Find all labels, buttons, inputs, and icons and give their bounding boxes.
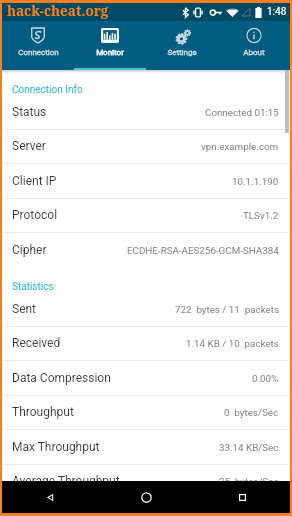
staticText: 25 bytes/Sec — [219, 476, 279, 487]
staticText: Server — [12, 139, 46, 153]
button[interactable]: Connection — [2, 21, 74, 68]
staticText: Monitor — [96, 48, 124, 57]
staticText: 0 bytes/Sec — [224, 407, 279, 418]
staticText: Statistics — [12, 281, 54, 293]
staticText: vpn.example.com — [201, 141, 279, 152]
staticText: Connection — [18, 48, 59, 57]
staticText: 1.14 KB / 10 packets — [186, 338, 279, 349]
button[interactable]: Throughput — [2, 395, 290, 430]
button[interactable]: Server — [2, 129, 290, 164]
staticText: Received — [12, 336, 61, 350]
staticText: Data Compression — [12, 371, 111, 385]
staticText: Status — [12, 105, 47, 119]
staticText: Protocol — [12, 208, 58, 222]
button[interactable]: Received — [2, 326, 290, 361]
staticText: Connected 01:15 — [205, 107, 279, 118]
staticText: Sent — [12, 302, 37, 316]
staticText: Max Throughput — [12, 440, 100, 454]
staticText: 10.1.1.190 — [232, 176, 279, 187]
staticText: Client IP — [12, 174, 57, 188]
button[interactable]: Max Throughput — [2, 430, 290, 465]
staticText: 722 bytes / 11 packets — [175, 304, 279, 315]
staticText: Average Throughput — [12, 474, 120, 488]
staticText: 1:48 — [267, 6, 287, 18]
button[interactable]: Cipher — [2, 233, 290, 268]
button[interactable]: Recents — [194, 481, 290, 513]
button[interactable]: Settings — [146, 21, 218, 68]
button[interactable]: Home — [98, 481, 194, 513]
staticText: Cipher — [12, 243, 47, 257]
button[interactable]: Average Throughput — [2, 464, 290, 499]
staticText: About — [243, 48, 265, 57]
staticText: hack-cheat.org — [7, 2, 109, 20]
staticText: Throughput — [12, 405, 74, 419]
button[interactable]: Monitor — [74, 21, 146, 68]
staticText: 33.14 KB/Sec — [219, 442, 279, 453]
button[interactable]: Data Compression — [2, 361, 290, 396]
button[interactable]: Sent — [2, 292, 290, 327]
staticText: Settings — [167, 48, 197, 57]
staticText: Connection Info — [12, 84, 83, 96]
button[interactable]: Protocol — [2, 198, 290, 233]
button[interactable]: Back — [2, 481, 98, 513]
button[interactable]: Status — [2, 95, 290, 130]
button[interactable]: About — [218, 21, 290, 68]
button[interactable]: Client IP — [2, 164, 290, 199]
staticText: 0.00% — [252, 373, 279, 384]
staticText: TLSv1.2 — [243, 210, 279, 221]
staticText: ECDHE-RSA-AES256-GCM-SHA384 — [127, 245, 279, 256]
